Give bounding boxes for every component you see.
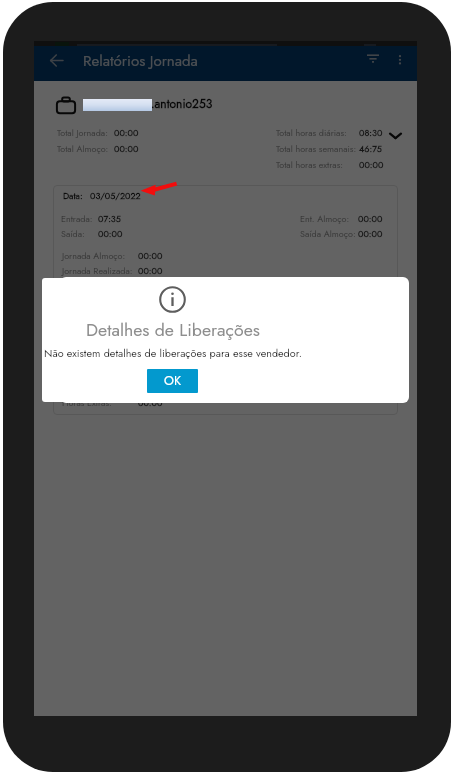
staticText: 00:00 xyxy=(358,227,383,240)
staticText: 07:35 xyxy=(98,212,121,225)
staticText: Jornada Realizada: xyxy=(62,264,133,277)
staticText: Jornada Almoço: xyxy=(62,249,126,262)
button[interactable]: OK xyxy=(147,369,198,393)
staticText: Data: xyxy=(63,189,83,202)
staticText: 00:00 xyxy=(98,227,123,240)
staticText: 46:75 xyxy=(359,142,382,155)
staticText: Total horas diárias: xyxy=(276,126,347,139)
staticText: 08:30 xyxy=(359,126,383,139)
staticText: 00:00 xyxy=(114,142,139,155)
staticText: 00:00 xyxy=(138,249,163,262)
staticText: Detalhes de Liberações xyxy=(86,317,260,343)
button[interactable]: More options xyxy=(382,42,417,77)
staticText: Não existem detalhes de liberações para … xyxy=(44,345,302,361)
staticText: Total horas semanais: xyxy=(276,142,357,155)
staticText: 00:00 xyxy=(359,158,384,171)
staticText: Horas Extras: xyxy=(62,396,112,409)
staticText: 00:00 xyxy=(114,126,139,139)
staticText: 03/05/2022 xyxy=(90,189,141,202)
staticText: .antonio253 xyxy=(151,95,213,112)
staticText: OK xyxy=(164,372,181,390)
staticText: 00:00 xyxy=(358,212,383,225)
staticText: 00:00 xyxy=(138,264,163,277)
staticText: Saída: xyxy=(61,227,85,240)
button[interactable]: Back xyxy=(39,43,74,78)
staticText: Total horas extras: xyxy=(276,158,344,171)
staticText: Ent. Almoço: xyxy=(300,212,350,225)
staticText: Saída Almoço: xyxy=(300,227,356,240)
staticText: Relatórios Jornada xyxy=(83,50,198,72)
button[interactable]: Expand details xyxy=(383,123,407,147)
staticText: Total Almoço: xyxy=(57,142,109,155)
staticText: Total Jornada: xyxy=(57,126,108,139)
button[interactable]: Filter xyxy=(355,42,390,77)
staticText: 00:00 xyxy=(138,396,163,409)
staticText: Entrada: xyxy=(61,212,93,225)
